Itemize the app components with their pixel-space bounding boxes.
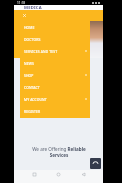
staticText: HOME (24, 25, 35, 30)
button[interactable]: Back (79, 170, 88, 179)
staticText: CONTACT (24, 85, 40, 90)
staticText: We are Offering Reliable Services (28, 146, 90, 158)
staticText: MEDICA (24, 5, 42, 10)
staticText: REGISTER (24, 109, 41, 114)
button[interactable]: DOCTORS (20, 33, 90, 45)
staticText: 11:18 (17, 1, 26, 5)
button[interactable]: MY ACCOUNT (20, 93, 90, 105)
button[interactable]: REGISTER (20, 105, 90, 117)
staticText: DOCTORS (24, 37, 41, 42)
staticText: SERVICES AND TEST (24, 49, 58, 54)
button[interactable]: HOME (20, 21, 90, 33)
staticText: MY ACCOUNT (24, 97, 47, 102)
button[interactable]: Home (54, 170, 63, 179)
button[interactable]: CONTACT (20, 81, 90, 93)
staticText: NEWS (24, 61, 34, 66)
button[interactable]: Recents (30, 170, 39, 179)
button[interactable]: SHOP (20, 69, 90, 81)
button[interactable]: NEWS (20, 57, 90, 69)
button[interactable]: Close menu (21, 12, 28, 19)
button[interactable]: SERVICES AND TEST (20, 45, 90, 57)
button[interactable]: Chat with us (90, 158, 101, 169)
staticText: SHOP (24, 73, 34, 78)
